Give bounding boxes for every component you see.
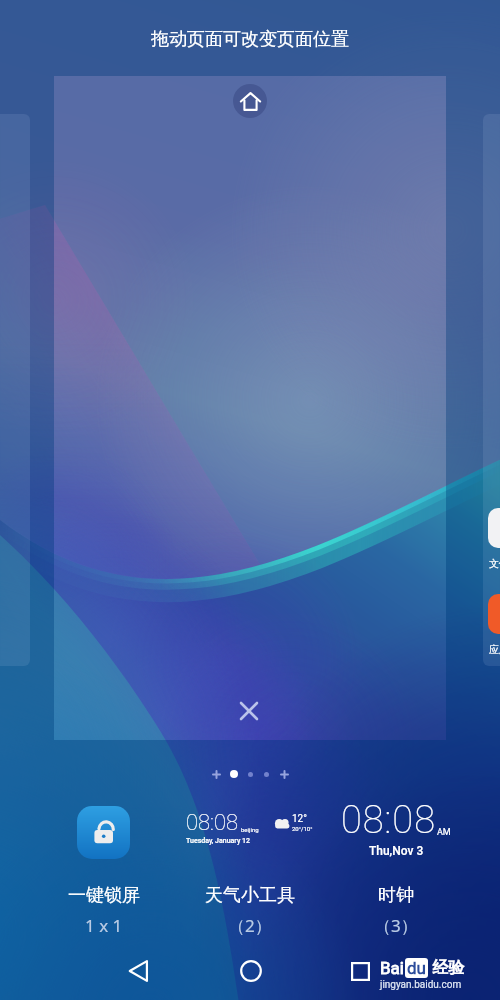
button[interactable]: 08:08 (318, 798, 473, 944)
button[interactable]: Recent apps (338, 949, 382, 993)
button[interactable]: 08:08 (172, 798, 327, 944)
staticText: 天气小工具 (205, 884, 295, 907)
button[interactable]: Home (229, 949, 273, 993)
staticText: 文件 (489, 557, 500, 570)
staticText: 08:08 (186, 810, 239, 836)
button[interactable]: Back (117, 949, 161, 993)
staticText: 12° (292, 813, 307, 825)
staticText: 1 x 1 (85, 914, 123, 937)
staticText: Thu,Nov 3 (369, 844, 424, 858)
staticText: AM (437, 827, 451, 838)
staticText: beijing (241, 826, 259, 833)
staticText: jingyan.baidu.com (380, 979, 462, 991)
staticText: Tuesday, January 12 (186, 837, 250, 845)
button[interactable]: Add page (210, 768, 222, 780)
staticText: 时钟 (378, 884, 414, 907)
staticText: Bai (380, 958, 404, 978)
staticText: 08:08 (341, 798, 436, 843)
staticText: 经验 (428, 956, 465, 978)
staticText: 拖动页面可改变页面位置 (151, 28, 349, 51)
staticText: （3） (374, 914, 418, 937)
button[interactable]: Set as default home screen (233, 84, 267, 118)
button[interactable]: Add page (278, 768, 290, 780)
button[interactable]: Delete this page (228, 690, 270, 732)
button[interactable]: 一键锁屏 (26, 798, 181, 944)
staticText: （2） (228, 914, 272, 937)
staticText: du (407, 958, 426, 978)
staticText: 一键锁屏 (68, 884, 140, 907)
staticText: 20°/10° (292, 825, 313, 832)
staticText: 应用 (489, 643, 500, 656)
